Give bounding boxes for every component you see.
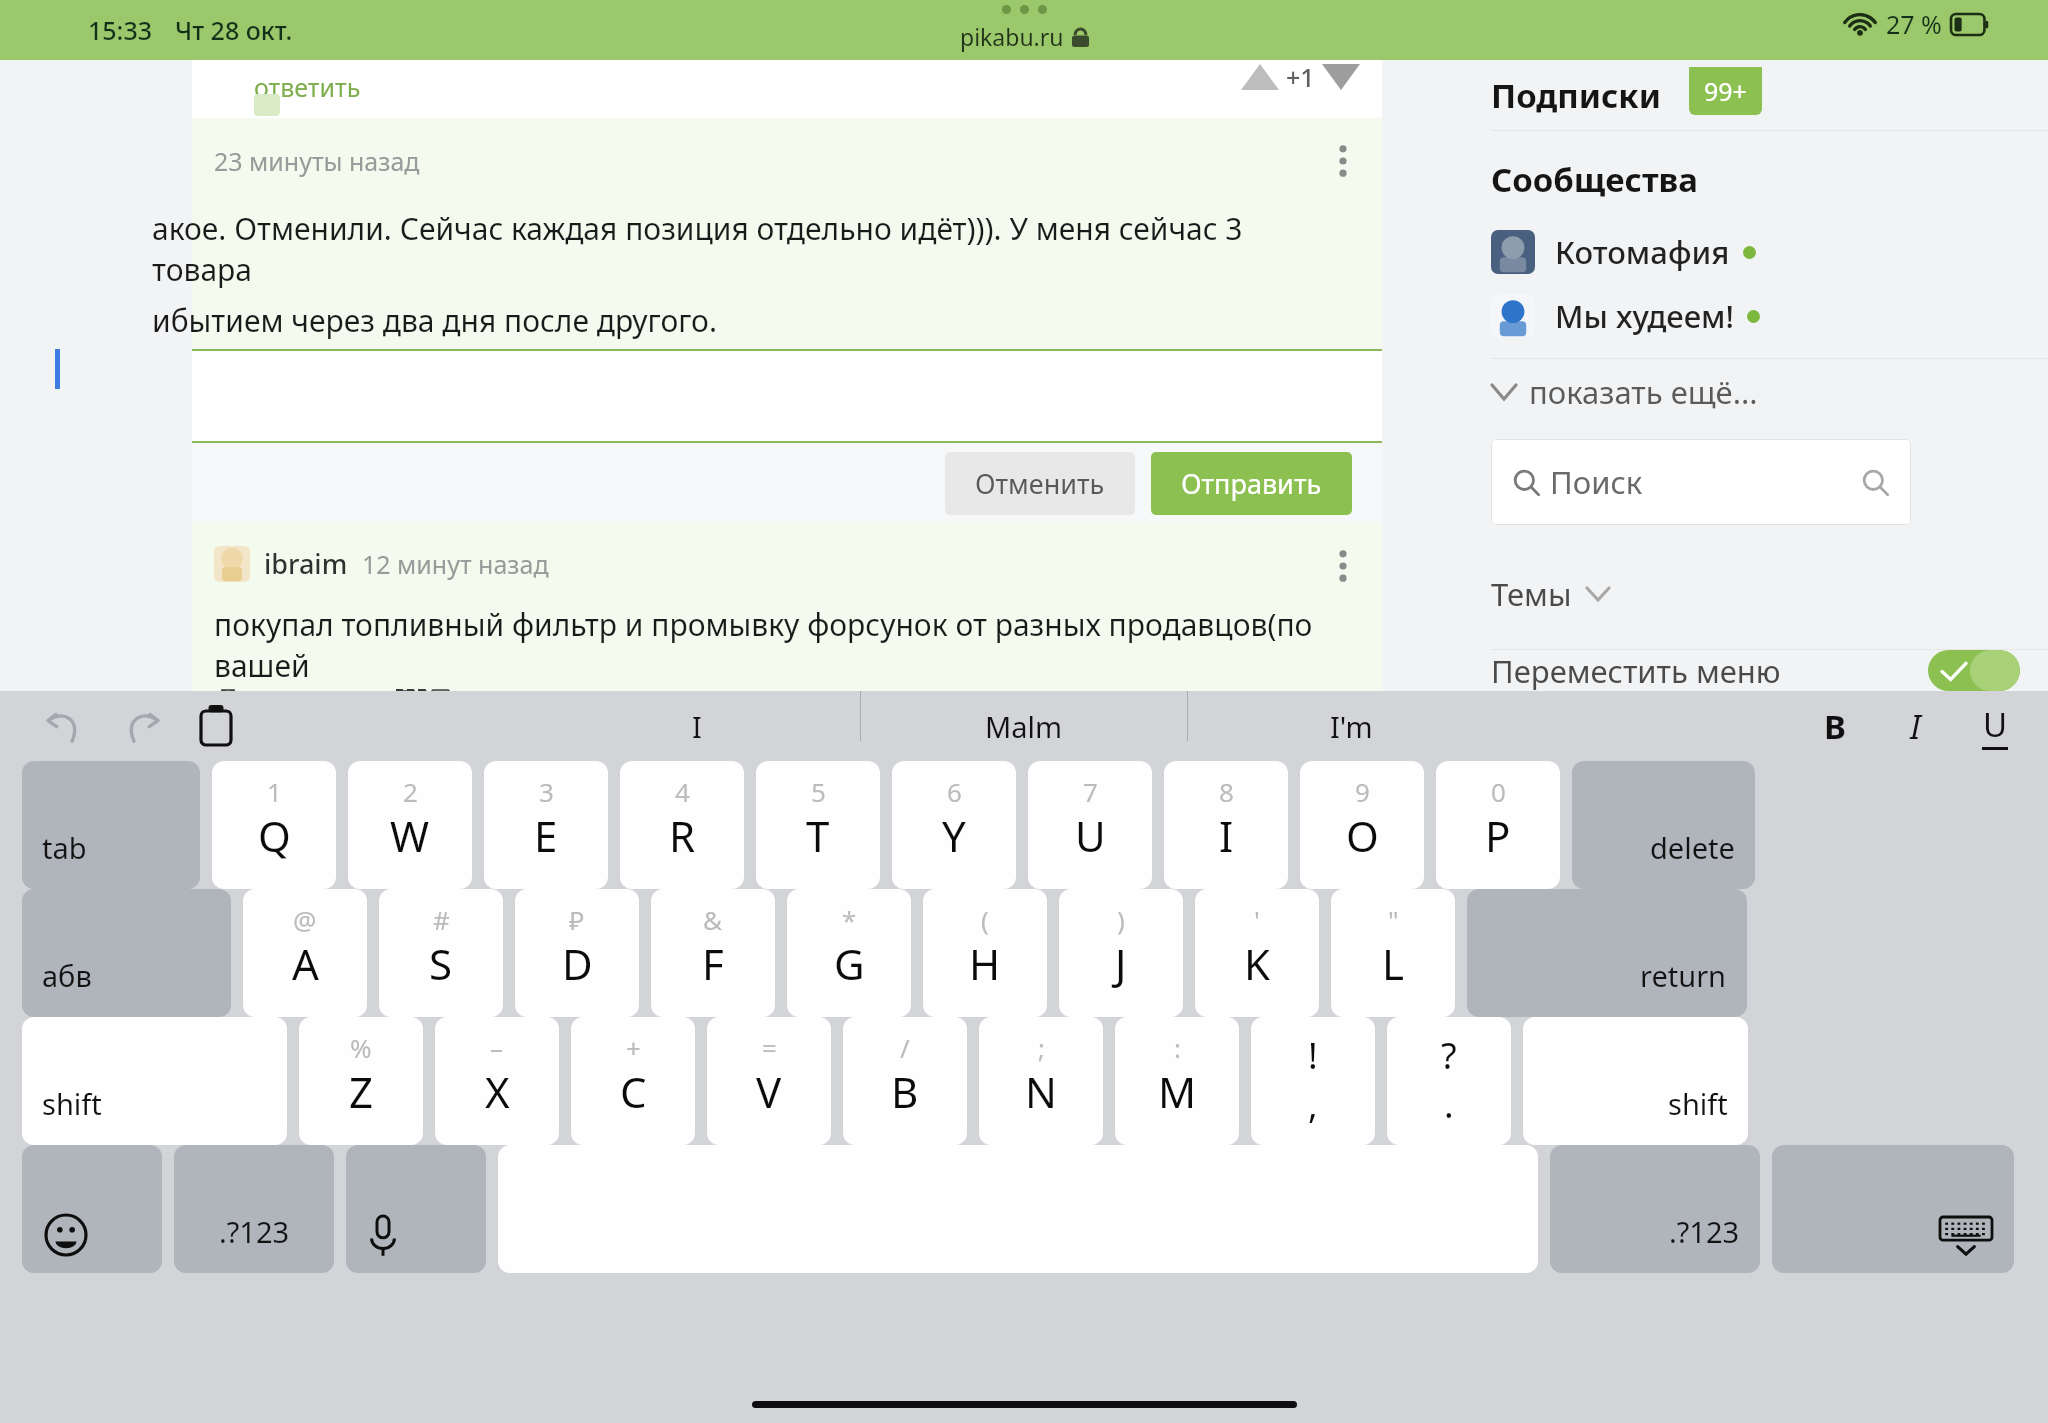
staticText: U: [1075, 807, 1106, 864]
staticText: /: [900, 1030, 910, 1065]
button[interactable]: Эмодзи: [22, 1145, 162, 1273]
button[interactable]: абв: [22, 889, 231, 1017]
button[interactable]: Котомафия: [1491, 226, 1756, 278]
button[interactable]: /: [843, 1017, 967, 1145]
button[interactable]: Отменить: [945, 452, 1135, 515]
button[interactable]: ₽: [515, 889, 639, 1017]
staticText: 6: [947, 774, 962, 809]
button[interactable]: Поиск: [1491, 439, 1911, 525]
button[interactable]: return: [1467, 889, 1747, 1017]
button[interactable]: tab: [22, 761, 200, 889]
staticText: ): [1117, 902, 1125, 937]
staticText: 2: [403, 774, 418, 809]
staticText: B: [1824, 704, 1846, 749]
button[interactable]: 5: [756, 761, 880, 889]
button[interactable]: #: [379, 889, 503, 1017]
button[interactable]: =: [707, 1017, 831, 1145]
button[interactable]: 0: [1436, 761, 1560, 889]
staticText: ответить: [254, 70, 361, 104]
button[interactable]: Меню комментария: [1322, 140, 1364, 182]
button[interactable]: shift: [1523, 1017, 1748, 1145]
staticText: Поиск: [1550, 461, 1643, 503]
button[interactable]: 8: [1164, 761, 1288, 889]
button[interactable]: Скрыть клавиатуру: [1772, 1145, 2014, 1273]
button[interactable]: Отправить: [1151, 452, 1352, 515]
button[interactable]: 2: [348, 761, 472, 889]
staticText: R: [669, 807, 696, 864]
button[interactable]: 1: [212, 761, 336, 889]
button[interactable]: *: [787, 889, 911, 1017]
button[interactable]: &: [651, 889, 775, 1017]
button[interactable]: 6: [892, 761, 1016, 889]
staticText: (: [981, 902, 989, 937]
button[interactable]: 3: [484, 761, 608, 889]
staticText: %: [350, 1030, 372, 1065]
button[interactable]: shift: [22, 1017, 287, 1145]
staticText: shift: [1668, 1084, 1728, 1123]
staticText: 8: [1219, 774, 1234, 809]
button[interactable]: ': [1195, 889, 1319, 1017]
button[interactable]: delete: [1572, 761, 1755, 889]
staticText: F: [702, 935, 724, 992]
button[interactable]: I: [534, 691, 860, 761]
button[interactable]: Меню комментария: [1322, 545, 1364, 587]
staticText: U: [1983, 702, 2008, 747]
button[interactable]: .?123: [1550, 1145, 1760, 1273]
button[interactable]: 9: [1300, 761, 1424, 889]
button[interactable]: показать ещё...: [1491, 359, 1758, 425]
button[interactable]: +: [571, 1017, 695, 1145]
button[interactable]: ;: [979, 1017, 1103, 1145]
button[interactable]: –: [435, 1017, 559, 1145]
staticText: return: [1640, 956, 1727, 995]
button[interactable]: I'm: [1188, 691, 1514, 761]
button[interactable]: (: [923, 889, 1047, 1017]
button[interactable]: 4: [620, 761, 744, 889]
button[interactable]: Голосовой ввод: [346, 1145, 486, 1273]
button[interactable]: Повторить: [114, 698, 170, 754]
staticText: L: [1382, 935, 1405, 992]
staticText: абв: [42, 956, 92, 995]
staticText: +1: [1286, 60, 1315, 94]
button[interactable]: ): [1059, 889, 1183, 1017]
staticText: –: [490, 1030, 504, 1065]
staticText: Котомафия: [1555, 231, 1730, 273]
staticText: A: [292, 935, 319, 992]
staticText: D: [562, 935, 593, 992]
button[interactable]: .?123: [174, 1145, 334, 1273]
button[interactable]: Malm: [861, 691, 1187, 761]
button[interactable]: Мы худеем!: [1491, 290, 1760, 342]
staticText: .: [1444, 1080, 1454, 1129]
staticText: N: [1025, 1063, 1057, 1120]
staticText: 4: [675, 774, 690, 809]
button[interactable]: Переместить меню: [1491, 650, 2020, 691]
staticText: Переместить меню: [1491, 650, 1781, 691]
button[interactable]: :: [1115, 1017, 1239, 1145]
staticText: shift: [42, 1084, 102, 1123]
staticText: 5: [811, 774, 826, 809]
button[interactable]: ": [1331, 889, 1455, 1017]
staticText: 7: [1083, 774, 1098, 809]
button[interactable]: U: [1968, 699, 2022, 753]
staticText: Подписки: [1491, 73, 1661, 118]
button[interactable]: ?: [1387, 1017, 1511, 1145]
button[interactable]: Отменить: [36, 698, 92, 754]
button[interactable]: I: [1888, 699, 1942, 753]
staticText: B: [891, 1063, 919, 1120]
button[interactable]: B: [1808, 699, 1862, 753]
staticText: =: [762, 1030, 777, 1065]
staticText: H: [969, 935, 1001, 992]
staticText: I: [692, 707, 702, 746]
staticText: Q: [258, 807, 291, 864]
button[interactable]: Темы: [1491, 573, 1610, 615]
staticText: I: [1219, 807, 1234, 864]
button[interactable]: Вставить: [188, 698, 244, 754]
button[interactable]: @: [243, 889, 367, 1017]
button[interactable]: !: [1251, 1017, 1375, 1145]
staticText: показать ещё...: [1529, 371, 1758, 413]
staticText: 99+: [1704, 74, 1747, 108]
button[interactable]: %: [299, 1017, 423, 1145]
staticText: @: [293, 902, 317, 937]
button[interactable]: 7: [1028, 761, 1152, 889]
